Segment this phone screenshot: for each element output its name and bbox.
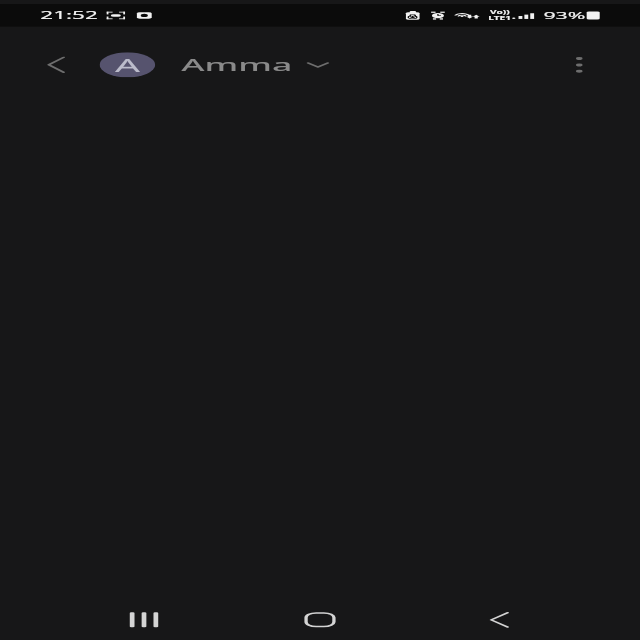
button[interactable]: Recent apps [117,608,171,632]
staticText: Amma [181,54,293,76]
staticText: LTE1 [488,15,511,22]
staticText: 21:52 [40,8,98,22]
staticText: A [115,53,140,77]
button[interactable]: Back [38,57,73,73]
button[interactable]: A [92,46,341,83]
staticText: 93% [543,8,586,22]
button[interactable]: Back [472,608,526,632]
button[interactable]: More options [561,57,597,73]
button[interactable]: Home [293,608,347,632]
staticText: Vo)) [490,9,510,15]
